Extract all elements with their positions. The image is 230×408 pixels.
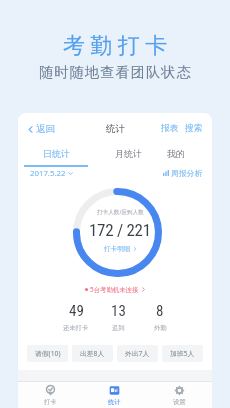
button[interactable]: 打卡 xyxy=(18,382,82,408)
staticText: 172 / 221 xyxy=(89,220,151,240)
staticText: 统计 xyxy=(108,398,121,406)
staticText: 2017.5.22 xyxy=(30,168,66,179)
button[interactable]: 统计 xyxy=(82,382,147,408)
button[interactable]: 月统计 xyxy=(98,142,158,167)
staticText: 迟到 xyxy=(112,324,125,332)
button[interactable]: 搜索 xyxy=(183,118,205,139)
staticText: 49 xyxy=(69,302,84,320)
button[interactable]: 外出7人 xyxy=(117,345,158,362)
button[interactable]: 出差8人 xyxy=(72,345,113,362)
staticText: 随时随地查看团队状态 xyxy=(39,63,192,81)
button[interactable]: 设置 xyxy=(147,382,212,408)
button[interactable]: 2017.5.22 xyxy=(18,165,77,182)
staticText: 外出7人 xyxy=(125,349,150,358)
staticText: 13 xyxy=(111,302,126,320)
staticText: 5台考勤机未连接 xyxy=(90,285,139,294)
staticText: 考勤打卡 xyxy=(60,32,170,60)
button[interactable]: 加班5人 xyxy=(162,345,203,362)
button[interactable]: 打卡明细 xyxy=(104,245,137,253)
staticText: 返回 xyxy=(36,123,55,135)
staticText: 出差8人 xyxy=(80,349,105,358)
staticText: 我的 xyxy=(167,148,185,159)
staticText: 周报分析 xyxy=(171,168,203,178)
staticText: 打卡人数/应到人数 xyxy=(97,208,144,216)
staticText: 请假(10) xyxy=(35,349,61,358)
button[interactable]: 周报分析 xyxy=(159,165,212,181)
staticText: 设置 xyxy=(173,398,186,406)
button[interactable]: 49 xyxy=(63,302,89,332)
button[interactable]: 8 xyxy=(147,302,173,332)
staticText: 加班5人 xyxy=(170,349,195,358)
staticText: 打卡明细 xyxy=(104,245,131,253)
button[interactable]: 我的 xyxy=(151,142,201,167)
staticText: 日统计 xyxy=(43,148,70,159)
staticText: 月统计 xyxy=(115,148,142,159)
button[interactable]: 报表 xyxy=(159,118,181,139)
staticText: 还未打卡 xyxy=(63,324,89,332)
staticText: 打卡 xyxy=(44,398,57,406)
button[interactable]: 返回 xyxy=(18,119,61,139)
button[interactable]: 13 xyxy=(105,302,131,332)
button[interactable]: 5台考勤机未连接 xyxy=(82,282,149,297)
button[interactable]: 日统计 xyxy=(24,142,88,167)
staticText: 统计 xyxy=(106,123,125,135)
staticText: 外勤 xyxy=(154,324,167,332)
staticText: 8 xyxy=(156,302,164,320)
button[interactable]: 请假(10) xyxy=(27,345,68,362)
